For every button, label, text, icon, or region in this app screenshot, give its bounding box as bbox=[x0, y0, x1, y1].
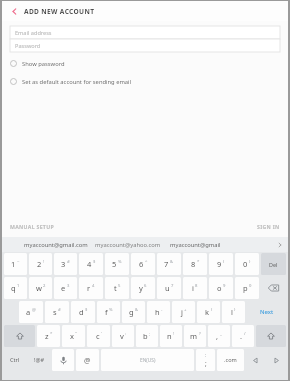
staticText: ) bbox=[249, 259, 251, 265]
button[interactable]: j bbox=[172, 301, 195, 323]
button[interactable]: myaccount@gmail.com bbox=[24, 241, 88, 249]
button[interactable]: e bbox=[54, 277, 77, 299]
button[interactable]: MANUAL SETUP bbox=[10, 223, 54, 230]
button[interactable]: 6 bbox=[131, 253, 155, 275]
button[interactable]: i bbox=[183, 277, 207, 299]
button[interactable]: l bbox=[222, 301, 245, 323]
button[interactable]: o bbox=[209, 277, 233, 299]
button[interactable]: !@# bbox=[28, 349, 50, 371]
button[interactable]: : bbox=[196, 349, 215, 371]
button[interactable]: Backspace bbox=[261, 277, 286, 299]
button[interactable]: w bbox=[29, 277, 52, 299]
staticText: 5 bbox=[118, 283, 121, 289]
button[interactable]: .com bbox=[217, 349, 244, 371]
button[interactable]: m bbox=[184, 325, 206, 347]
staticText: Password bbox=[15, 42, 41, 50]
button[interactable]: d bbox=[71, 301, 95, 323]
button[interactable]: y bbox=[131, 277, 155, 299]
button[interactable]: Back bbox=[7, 4, 21, 18]
staticText: 5 bbox=[112, 259, 117, 269]
button[interactable]: Delete bbox=[261, 253, 286, 275]
button[interactable]: Show password bbox=[10, 58, 288, 69]
button[interactable]: h bbox=[147, 301, 170, 323]
button[interactable]: Ctrl bbox=[4, 349, 26, 371]
button[interactable]: 5 bbox=[105, 253, 129, 275]
staticText: @ bbox=[32, 307, 36, 313]
staticText: Email address bbox=[15, 29, 52, 37]
staticText: Ctrl bbox=[10, 356, 20, 364]
staticText: r bbox=[87, 283, 91, 293]
staticText: / bbox=[244, 331, 246, 337]
staticText: $ bbox=[93, 259, 96, 265]
button[interactable]: s bbox=[45, 301, 69, 323]
button[interactable]: myaccount@gmail bbox=[170, 241, 221, 249]
button[interactable]: Email address bbox=[10, 26, 280, 39]
staticText: a bbox=[26, 307, 31, 317]
button[interactable]: @ bbox=[76, 349, 99, 371]
button[interactable]: Voice input bbox=[52, 349, 74, 371]
button[interactable]: More suggestions bbox=[272, 237, 288, 252]
staticText: k bbox=[205, 307, 210, 317]
button[interactable]: 2 bbox=[29, 253, 52, 275]
button[interactable]: 8 bbox=[183, 253, 207, 275]
button[interactable]: z bbox=[37, 325, 60, 347]
staticText: 0 bbox=[243, 259, 248, 269]
button[interactable]: , bbox=[208, 325, 230, 347]
button[interactable]: b bbox=[136, 325, 158, 347]
staticText: x bbox=[70, 331, 74, 341]
button[interactable]: Set as default account for sending email bbox=[10, 76, 288, 87]
button[interactable]: Password bbox=[10, 39, 280, 52]
staticText: & bbox=[170, 259, 174, 265]
button[interactable]: 3 bbox=[54, 253, 77, 275]
staticText: $ bbox=[85, 307, 88, 313]
button[interactable]: 4 bbox=[79, 253, 103, 275]
button[interactable]: a bbox=[19, 301, 43, 323]
button[interactable]: n bbox=[160, 325, 182, 347]
staticText: ADD NEW ACCOUNT bbox=[24, 7, 95, 16]
staticText: g bbox=[129, 307, 134, 317]
staticText: ~ bbox=[17, 259, 20, 265]
button[interactable]: Space bbox=[101, 349, 194, 371]
staticText: w bbox=[36, 283, 42, 293]
staticText: t bbox=[114, 283, 117, 293]
staticText: 4 bbox=[92, 283, 95, 289]
button[interactable]: . bbox=[232, 325, 254, 347]
button[interactable]: 1 bbox=[4, 253, 27, 275]
button[interactable]: c bbox=[87, 325, 110, 347]
staticText: z bbox=[45, 331, 49, 341]
button[interactable]: r bbox=[79, 277, 103, 299]
button[interactable]: g bbox=[122, 301, 145, 323]
staticText: * bbox=[197, 259, 200, 265]
staticText: ( bbox=[223, 259, 225, 265]
staticText: 7 bbox=[164, 259, 169, 269]
button[interactable]: Shift bbox=[4, 325, 35, 347]
button[interactable]: k bbox=[197, 301, 220, 323]
staticText: q bbox=[11, 283, 16, 293]
staticText: ; bbox=[205, 359, 207, 368]
button[interactable]: myaccount@yahoo.com bbox=[95, 241, 161, 249]
button[interactable]: x bbox=[62, 325, 85, 347]
button[interactable]: Shift bbox=[256, 325, 286, 347]
button[interactable]: 9 bbox=[209, 253, 233, 275]
button[interactable]: Next bbox=[247, 301, 286, 323]
staticText: Set as default account for sending email bbox=[22, 78, 132, 86]
button[interactable]: u bbox=[157, 277, 181, 299]
button[interactable]: f bbox=[97, 301, 120, 323]
staticText: & bbox=[135, 307, 139, 313]
staticText: ; bbox=[149, 331, 151, 337]
button[interactable]: 7 bbox=[157, 253, 181, 275]
button[interactable]: Move right bbox=[267, 349, 286, 371]
staticText: SIGN IN bbox=[257, 223, 280, 230]
button[interactable]: p bbox=[235, 277, 259, 299]
staticText: myaccount@gmail.com bbox=[24, 241, 88, 249]
button[interactable]: t bbox=[105, 277, 129, 299]
staticText: % bbox=[118, 259, 122, 265]
staticText: v bbox=[120, 331, 124, 341]
button[interactable]: q bbox=[4, 277, 27, 299]
staticText: b bbox=[143, 331, 148, 341]
button[interactable]: v bbox=[112, 325, 134, 347]
staticText: + bbox=[184, 307, 187, 313]
button[interactable]: Move left bbox=[246, 349, 265, 371]
button[interactable]: SIGN IN bbox=[257, 223, 280, 230]
button[interactable]: 0 bbox=[235, 253, 259, 275]
